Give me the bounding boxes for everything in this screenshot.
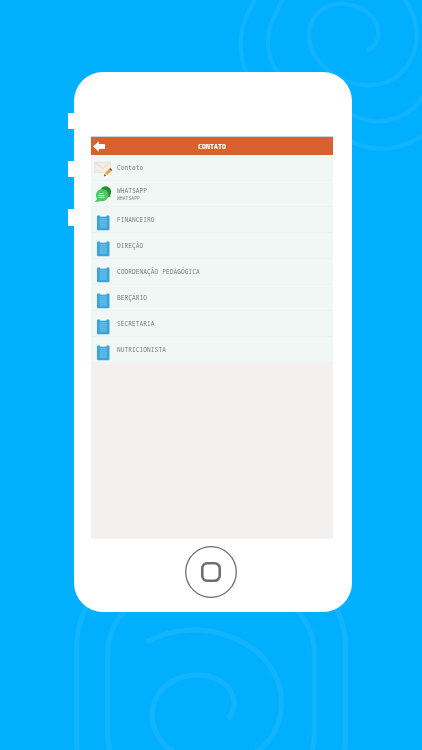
button[interactable]: BERÇÁRIO bbox=[91, 285, 333, 311]
button[interactable]: DIREÇÃO bbox=[91, 233, 333, 259]
staticText: SECRETARIA bbox=[117, 319, 155, 327]
button[interactable]: Home bbox=[185, 546, 237, 598]
staticText: CONTATO bbox=[198, 142, 226, 151]
button[interactable]: FINANCEIRO bbox=[91, 207, 333, 233]
staticText: NUTRICIONISTA bbox=[117, 345, 166, 353]
button[interactable]: Contato bbox=[91, 155, 333, 181]
button[interactable]: SECRETARIA bbox=[91, 311, 333, 337]
staticText: WHATSAPP bbox=[117, 186, 148, 194]
staticText: Contato bbox=[117, 163, 144, 171]
button[interactable]: COORDENAÇÃO PEDAGÓGICA bbox=[91, 259, 333, 285]
button[interactable]: WHATSAPP bbox=[91, 181, 333, 207]
button[interactable]: Back bbox=[91, 138, 107, 155]
button[interactable]: NUTRICIONISTA bbox=[91, 337, 333, 363]
staticText: BERÇÁRIO bbox=[117, 293, 148, 301]
staticText: FINANCEIRO bbox=[117, 215, 155, 223]
staticText: DIREÇÃO bbox=[117, 241, 144, 249]
staticText: COORDENAÇÃO PEDAGÓGICA bbox=[117, 267, 200, 275]
staticText: WHATSAPP bbox=[117, 195, 140, 201]
